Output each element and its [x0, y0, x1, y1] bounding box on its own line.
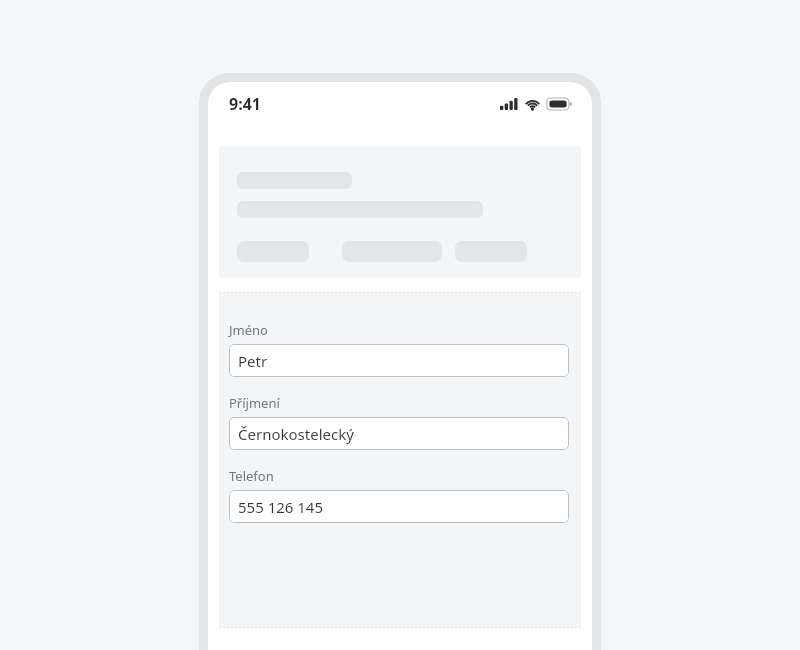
staticText: Jméno — [229, 321, 268, 339]
button[interactable]: 555 126 145 — [229, 490, 569, 523]
button[interactable]: Petr — [229, 344, 569, 377]
staticText: 9:41 — [229, 93, 261, 115]
staticText: Příjmení — [229, 394, 280, 412]
staticText: Černokostelecký — [238, 424, 354, 444]
staticText: Telefon — [229, 467, 274, 485]
button[interactable]: Černokostelecký — [229, 417, 569, 450]
staticText: Petr — [238, 351, 268, 371]
staticText: 555 126 145 — [238, 497, 324, 517]
